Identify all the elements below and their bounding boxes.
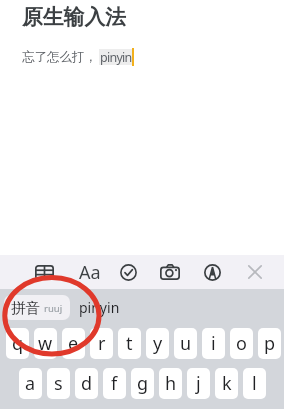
button[interactable]: Camera [149,255,191,289]
staticText: j [196,371,201,396]
staticText: 忘了怎么打， [22,49,97,65]
staticText: w [38,331,53,356]
button[interactable]: 拼音 [4,295,70,320]
staticText: f [111,371,118,396]
button[interactable]: o [230,328,253,359]
staticText: o [236,331,247,356]
button[interactable]: Close [234,255,276,289]
staticText: s [54,371,63,396]
staticText: t [126,331,133,356]
staticText: p [264,331,276,356]
button[interactable]: a [19,368,42,399]
button[interactable]: h [159,368,182,399]
button[interactable]: i [202,328,225,359]
button[interactable]: e [62,328,85,359]
button[interactable]: t [118,328,141,359]
button[interactable]: s [47,368,70,399]
button[interactable]: y [146,328,169,359]
staticText: h [165,371,177,396]
staticText: l [252,371,257,396]
button[interactable]: Text format [69,255,111,289]
staticText: pinyin [79,298,120,317]
staticText: 拼音 [11,299,40,317]
button[interactable]: l [243,368,266,399]
staticText: ruuj [44,302,63,315]
staticText: a [25,371,36,396]
button[interactable]: p [258,328,281,359]
button[interactable]: w [34,328,57,359]
staticText: i [211,331,216,356]
button[interactable]: Draw [191,255,233,289]
staticText: e [68,331,79,356]
button[interactable]: k [215,368,238,399]
button[interactable]: pinyin [79,298,120,317]
staticText: Aa [79,260,101,285]
staticText: q [12,331,24,356]
button[interactable]: g [131,368,154,399]
staticText: y [153,331,163,356]
button[interactable]: f [103,368,126,399]
button[interactable]: d [75,368,98,399]
staticText: d [81,371,93,396]
staticText: k [222,371,232,396]
button[interactable]: q [6,328,29,359]
staticText: pinyin [100,49,132,65]
staticText: r [98,331,106,356]
button[interactable]: u [174,328,197,359]
button[interactable]: j [187,368,210,399]
button[interactable]: Table [23,255,65,289]
staticText: 原生输入法 [22,4,126,30]
button[interactable]: Check [107,255,149,289]
button[interactable]: r [90,328,113,359]
staticText: u [180,331,192,356]
staticText: g [137,371,149,396]
